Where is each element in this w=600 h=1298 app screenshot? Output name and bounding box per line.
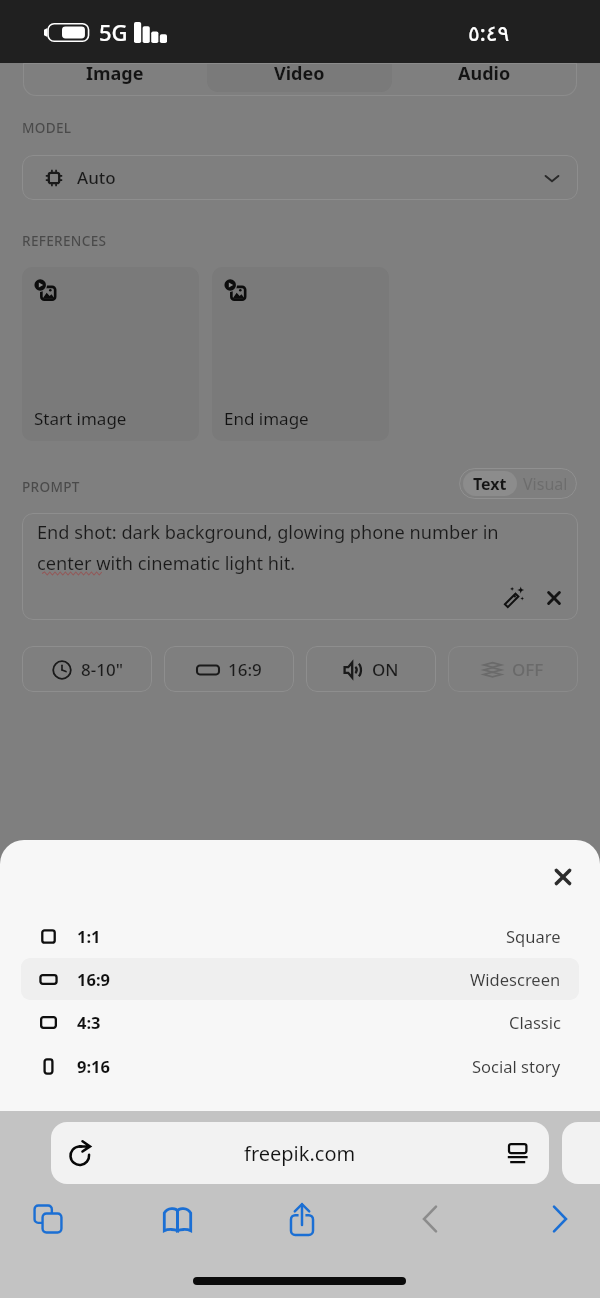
button[interactable]: Start image — [22, 267, 199, 441]
staticText: End shot: dark background, glowing phone… — [37, 520, 499, 575]
button[interactable]: 1:1 — [21, 915, 579, 957]
button[interactable]: Bookmarks — [150, 1192, 204, 1246]
button[interactable]: Visual — [517, 468, 573, 499]
button[interactable]: Reload — [66, 1138, 96, 1168]
staticText: Classic — [509, 1011, 561, 1033]
staticText: 8-10" — [81, 658, 123, 681]
button[interactable]: 8-10" — [22, 646, 152, 692]
button[interactable]: Auto — [22, 155, 578, 200]
button[interactable]: 16:9 — [164, 646, 294, 692]
button[interactable]: Next tab — [562, 1122, 600, 1184]
staticText: Auto — [77, 166, 116, 189]
button[interactable]: Video — [207, 63, 392, 92]
staticText: REFERENCES — [22, 231, 107, 250]
button[interactable]: 4:3 — [21, 1001, 579, 1043]
staticText: Visual — [523, 473, 568, 495]
button[interactable]: Text — [463, 471, 517, 496]
button[interactable]: Audio — [392, 63, 577, 92]
button[interactable]: Enhance prompt — [503, 586, 527, 610]
staticText: End image — [224, 407, 309, 430]
button[interactable]: Forward — [533, 1192, 587, 1246]
staticText: MODEL — [22, 118, 72, 137]
button[interactable]: Back — [403, 1192, 457, 1246]
button[interactable]: End shot: dark background, glowing phone… — [22, 513, 578, 620]
button[interactable]: Clear prompt — [543, 587, 565, 609]
button[interactable]: Page settings — [503, 1138, 533, 1168]
button[interactable]: 9:16 — [21, 1045, 579, 1087]
button[interactable]: Close — [544, 858, 582, 896]
staticText: 16:9 — [77, 968, 110, 990]
button[interactable]: Reload — [51, 1122, 549, 1184]
staticText: Widescreen — [470, 968, 561, 990]
button[interactable]: Tabs — [21, 1192, 75, 1246]
button[interactable]: ON — [306, 646, 436, 692]
staticText: 16:9 — [228, 658, 262, 681]
button[interactable]: Image — [23, 63, 207, 92]
staticText: 5G — [99, 17, 128, 47]
button[interactable]: 16:9 — [21, 958, 579, 1000]
staticText: ٥:٤٩ — [468, 17, 510, 47]
button[interactable]: Share — [275, 1192, 329, 1246]
staticText: Image — [86, 61, 144, 86]
staticText: Square — [506, 925, 561, 947]
staticText: PROMPT — [22, 477, 80, 496]
staticText: 4:3 — [77, 1011, 101, 1033]
staticText: 1:1 — [77, 925, 101, 947]
staticText: OFF — [512, 658, 544, 681]
staticText: Video — [274, 63, 325, 86]
staticText: Text — [473, 473, 507, 495]
staticText: 9:16 — [77, 1055, 110, 1077]
button[interactable]: OFF — [448, 646, 578, 692]
button[interactable]: End image — [212, 267, 389, 441]
staticText: ON — [372, 658, 399, 681]
staticText: Social story — [472, 1055, 561, 1077]
staticText: freepik.com — [244, 1140, 356, 1167]
staticText: Start image — [34, 407, 127, 430]
staticText: Audio — [458, 61, 511, 86]
